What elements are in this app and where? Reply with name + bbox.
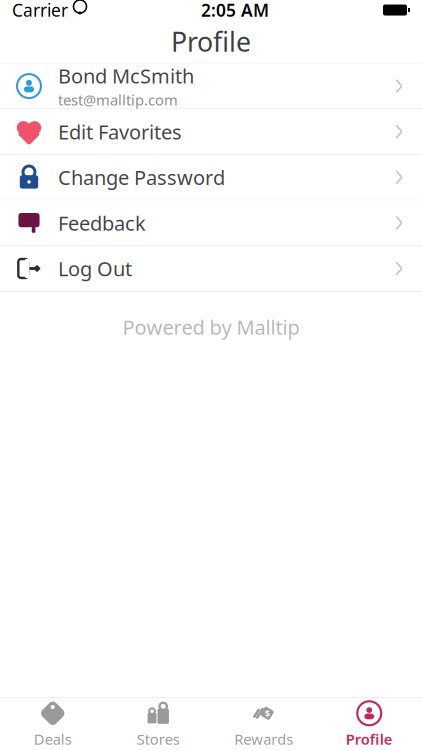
button[interactable]: $ (211, 699, 316, 749)
staticText: Powered by Malltip (122, 314, 299, 340)
button[interactable]: Change Password (0, 155, 422, 200)
staticText: $ (265, 707, 270, 719)
staticText: Carrier (12, 0, 68, 21)
staticText: Bond McSmith (58, 63, 194, 89)
staticText: 2:05 AM (201, 0, 269, 21)
button[interactable]: Edit Favorites (0, 109, 422, 154)
button[interactable]: Stores (105, 699, 211, 749)
button[interactable]: Bond McSmith (0, 64, 422, 109)
button[interactable]: Log Out (0, 246, 422, 291)
button[interactable]: Deals (0, 699, 105, 749)
staticText: Stores (137, 729, 180, 749)
staticText: Feedback (58, 210, 146, 236)
button[interactable]: Profile (316, 699, 422, 749)
staticText: Change Password (58, 164, 225, 191)
staticText: Edit Favorites (58, 118, 182, 145)
staticText: Log Out (58, 255, 132, 282)
button[interactable]: Feedback (0, 200, 422, 245)
staticText: Rewards (234, 729, 293, 749)
staticText: test@malltip.com (58, 90, 178, 110)
staticText: Deals (34, 729, 72, 749)
staticText: Profile (346, 729, 393, 749)
staticText: Profile (171, 24, 251, 59)
